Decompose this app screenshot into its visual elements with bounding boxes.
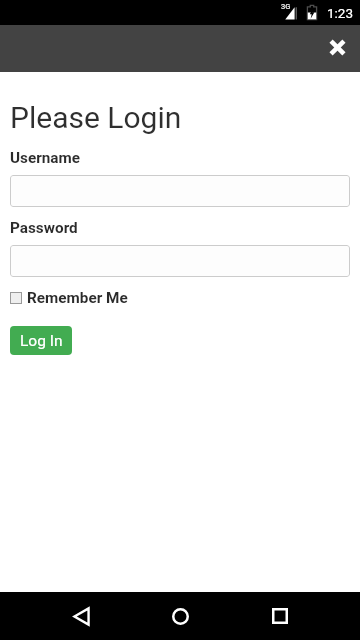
button[interactable]: Recent apps (256, 592, 304, 640)
button[interactable]: Log In (10, 326, 72, 355)
button[interactable]: Home (156, 592, 204, 640)
staticText: 1:23 (327, 5, 354, 21)
button[interactable]: Back (56, 592, 104, 640)
staticText: 3G (281, 2, 291, 11)
button[interactable]: Remember Me (10, 289, 128, 307)
staticText: Please Login (10, 100, 182, 135)
staticText: Log In (20, 332, 63, 350)
staticText: Password (10, 219, 78, 237)
staticText: Remember Me (27, 289, 128, 307)
button[interactable]: Close (314, 26, 360, 72)
button[interactable] (10, 175, 350, 207)
staticText: Username (10, 149, 81, 167)
button[interactable] (10, 245, 350, 277)
